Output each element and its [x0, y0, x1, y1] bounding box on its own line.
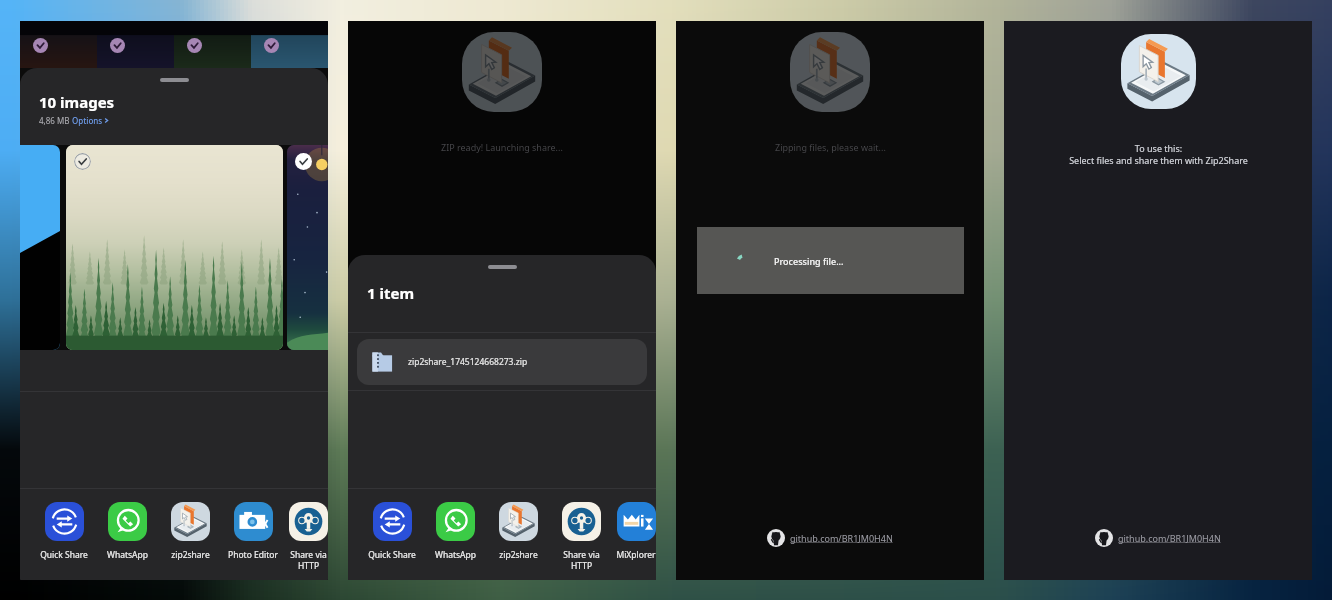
staticText: 10 images: [39, 92, 115, 112]
staticText: Zipping files, please wait...: [775, 141, 886, 153]
button[interactable]: zip2share_1745124668273.zip: [357, 339, 647, 385]
staticText: WhatsApp: [107, 549, 148, 561]
staticText: MiXplorer: [616, 549, 656, 561]
staticText: github.com/BR1JM0H4N: [1118, 532, 1221, 544]
staticText: Quick Share: [368, 549, 416, 561]
staticText: To use this: Select files and share them…: [1069, 142, 1248, 167]
button[interactable]: MiXplorer: [616, 502, 656, 561]
button[interactable]: zip2share: [162, 502, 218, 561]
staticText: ZIP ready! Launching share...: [441, 141, 563, 153]
button[interactable]: GitHub profile link: [1095, 529, 1221, 547]
staticText: Processing file...: [774, 255, 844, 267]
button[interactable]: zip2share: [490, 502, 546, 561]
staticText: WhatsApp: [435, 549, 476, 561]
button[interactable]: GitHub profile link: [767, 529, 893, 547]
button[interactable]: WhatsApp: [99, 502, 155, 561]
button[interactable]: Quick Share: [36, 502, 92, 561]
staticText: Share via HTTP: [563, 549, 600, 571]
button[interactable]: Options: [72, 115, 110, 126]
staticText: zip2share: [171, 549, 210, 561]
staticText: 4,86 MB: [39, 115, 72, 126]
button[interactable]: Selected: [295, 153, 312, 170]
staticText: zip2share: [499, 549, 538, 561]
button[interactable]: Selected photo: [264, 38, 279, 53]
button[interactable]: WhatsApp: [427, 502, 483, 561]
button[interactable]: Photo Editor: [225, 502, 281, 561]
staticText: zip2share_1745124668273.zip: [408, 356, 528, 368]
button[interactable]: Share via HTTP: [553, 502, 609, 571]
staticText: github.com/BR1JM0H4N: [790, 532, 893, 544]
button[interactable]: Selected photo: [110, 38, 125, 53]
button[interactable]: Quick Share: [364, 502, 420, 561]
staticText: Options: [72, 115, 103, 126]
button[interactable]: Selected photo: [187, 38, 202, 53]
staticText: Share via HTTP: [290, 549, 327, 571]
staticText: 1 item: [367, 283, 415, 303]
button[interactable]: Selected: [74, 153, 91, 170]
button[interactable]: Share via HTTP: [288, 502, 328, 571]
staticText: Quick Share: [40, 549, 88, 561]
staticText: Photo Editor: [228, 549, 278, 561]
button[interactable]: Selected photo: [33, 38, 48, 53]
